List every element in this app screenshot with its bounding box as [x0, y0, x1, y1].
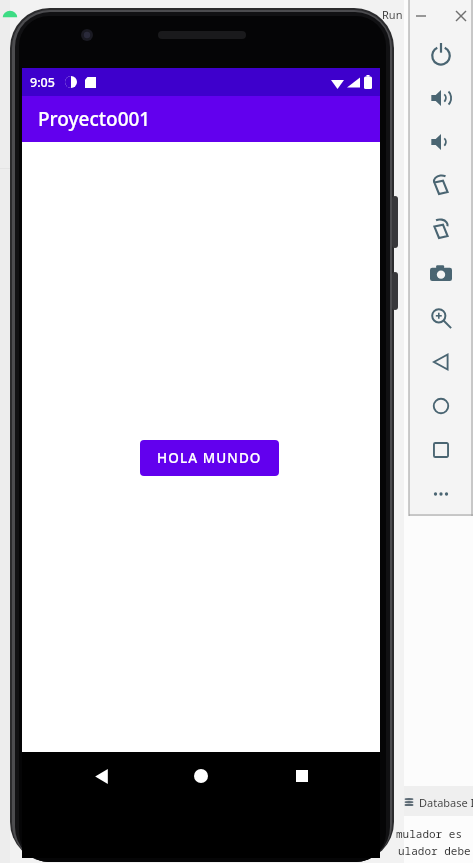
button[interactable]: Back — [409, 340, 473, 384]
staticText: HOLA MUNDO — [157, 449, 262, 467]
button[interactable]: Minimize — [409, 4, 433, 28]
button[interactable]: Home — [409, 384, 473, 428]
staticText: Database I — [419, 795, 473, 810]
button[interactable]: Volume up — [409, 76, 473, 120]
staticText: Proyecto001 — [38, 106, 151, 132]
button[interactable]: Home — [179, 754, 223, 798]
button[interactable]: Take screenshot — [409, 252, 473, 296]
button[interactable]: Back — [79, 754, 123, 798]
button[interactable]: Zoom — [409, 296, 473, 340]
button[interactable]: Power — [409, 32, 473, 76]
staticText: mulador es — [396, 826, 462, 841]
button[interactable]: More — [409, 472, 473, 516]
button[interactable]: Volume down — [409, 120, 473, 164]
staticText: Run — [382, 7, 403, 22]
button[interactable]: Close — [449, 4, 473, 28]
button[interactable]: HOLA MUNDO — [140, 440, 279, 476]
staticText: ulador debe — [398, 843, 471, 858]
button[interactable]: Recent apps — [280, 754, 324, 798]
button[interactable]: Rotate left — [409, 164, 473, 208]
button[interactable]: Overview — [409, 428, 473, 472]
button[interactable]: Rotate right — [409, 208, 473, 252]
staticText: 9:05 — [30, 74, 55, 91]
